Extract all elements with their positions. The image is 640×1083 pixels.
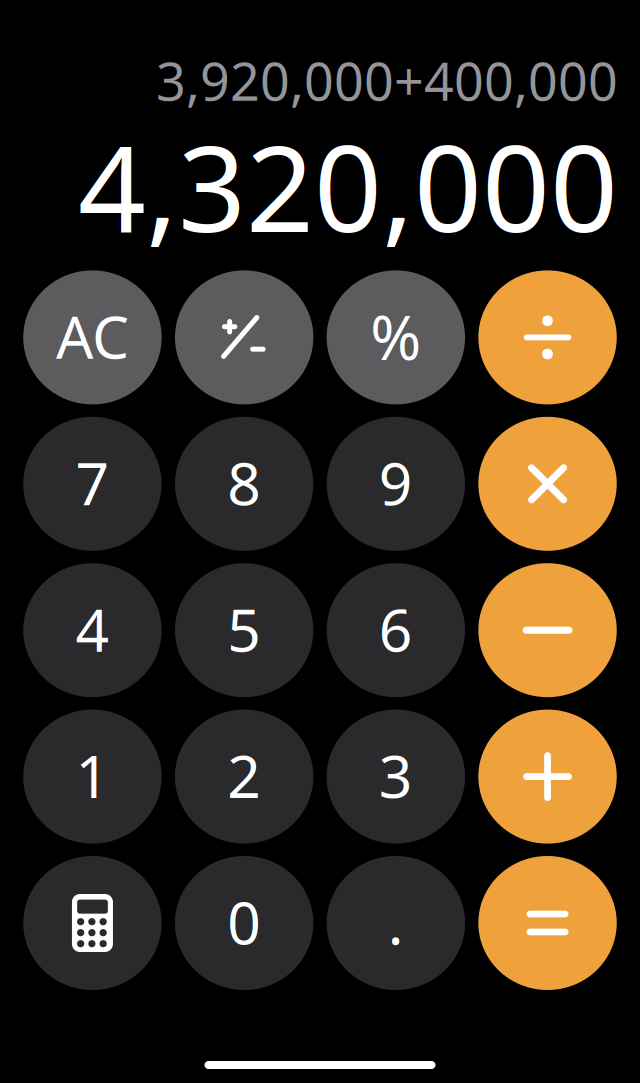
button[interactable]: 4 [23,563,162,697]
button[interactable]: Plus minus [175,270,313,404]
staticText: 8 [227,443,261,521]
staticText: 1 [75,736,109,814]
button[interactable]: Subtract [478,563,617,697]
button[interactable]: 0 [175,856,313,990]
button[interactable]: Divide [478,270,617,404]
staticText: . [388,883,404,961]
staticText: 2 [227,736,261,814]
staticText: AC [56,297,129,375]
button[interactable]: Add [478,710,617,844]
staticText: 7 [75,443,109,521]
staticText: 4 [75,590,109,668]
button[interactable]: 5 [175,563,313,697]
button[interactable]: 6 [327,563,465,697]
button[interactable]: AC [23,270,162,404]
staticText: 4,320,000 [78,107,618,265]
button[interactable]: % [327,270,465,404]
button[interactable]: 9 [327,417,465,551]
button[interactable]: 1 [23,710,162,844]
button[interactable]: 8 [175,417,313,551]
button[interactable]: Multiply [478,417,617,551]
staticText: % [370,295,421,377]
staticText: 5 [227,590,261,668]
staticText: 0 [227,883,261,961]
staticText: 3,920,000+400,000 [156,46,618,115]
button[interactable]: 3 [327,710,465,844]
button[interactable]: Calculator modes [23,856,162,990]
button[interactable]: 2 [175,710,313,844]
button[interactable]: . [327,856,465,990]
staticText: 9 [379,443,413,521]
button[interactable]: Equals [478,856,617,990]
staticText: 3 [379,736,413,814]
button[interactable]: 7 [23,417,162,551]
staticText: 6 [379,590,413,668]
